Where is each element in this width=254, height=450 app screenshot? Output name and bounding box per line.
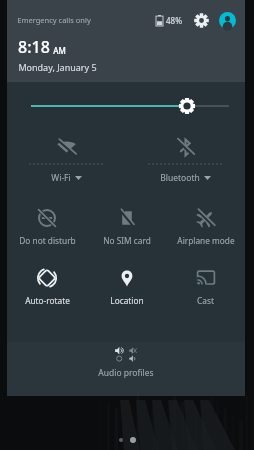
staticText: Bluetooth xyxy=(160,172,200,184)
button[interactable]: No SIM card xyxy=(87,208,166,246)
staticText: Emergency calls only xyxy=(17,15,91,25)
button[interactable]: Settings xyxy=(191,10,211,30)
button[interactable]: Location xyxy=(87,268,166,306)
button[interactable]: Cast xyxy=(166,268,245,306)
staticText: AM xyxy=(53,45,66,56)
staticText: Auto-rotate xyxy=(25,295,70,306)
button[interactable]: User profile xyxy=(217,10,237,30)
staticText: Monday, January 5 xyxy=(18,61,97,73)
button[interactable]: Brightness xyxy=(7,95,245,117)
staticText: Audio profiles xyxy=(98,367,154,379)
staticText: Cast xyxy=(197,295,214,306)
staticText: 48% xyxy=(166,15,182,26)
button[interactable]: Audio profiles xyxy=(7,342,245,396)
staticText: Location xyxy=(110,295,144,306)
button[interactable]: Bluetooth xyxy=(126,134,245,184)
button[interactable]: Wi-Fi xyxy=(7,134,126,184)
staticText: Wi-Fi xyxy=(51,172,71,184)
staticText: Airplane mode xyxy=(177,235,235,246)
button[interactable]: Do not disturb xyxy=(7,208,87,246)
button[interactable]: Auto-rotate xyxy=(7,268,87,306)
staticText: No SIM card xyxy=(103,235,151,246)
staticText: Do not disturb xyxy=(19,235,76,246)
button[interactable]: Airplane mode xyxy=(166,208,245,246)
staticText: 8:18 xyxy=(18,36,50,58)
